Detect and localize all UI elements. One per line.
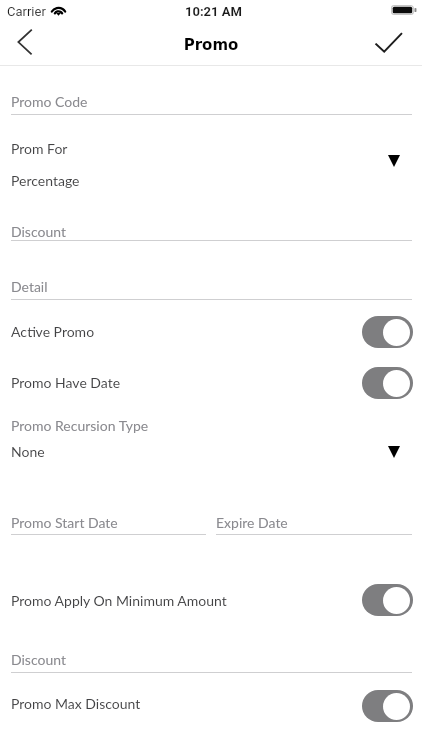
staticText: Promo Code bbox=[11, 93, 88, 110]
button[interactable] bbox=[0, 316, 356, 348]
button[interactable]: Active Promo bbox=[362, 316, 413, 348]
button[interactable] bbox=[0, 584, 356, 616]
button[interactable]: Choose promo for bbox=[388, 155, 400, 167]
button[interactable] bbox=[0, 367, 356, 399]
staticText: Detail bbox=[11, 278, 48, 295]
staticText: None bbox=[11, 443, 45, 460]
button[interactable] bbox=[11, 645, 412, 674]
staticText: Prom For bbox=[11, 140, 68, 157]
staticText: Expire Date bbox=[216, 514, 288, 531]
staticText: Promo Apply On Minimum Amount bbox=[11, 592, 227, 609]
button[interactable] bbox=[11, 272, 412, 301]
button[interactable]: Promo Max Discount bbox=[362, 690, 413, 722]
staticText: Promo Max Discount bbox=[11, 695, 141, 712]
button[interactable] bbox=[11, 508, 206, 536]
staticText: Discount bbox=[11, 223, 66, 240]
button[interactable] bbox=[0, 412, 422, 466]
staticText: Active Promo bbox=[11, 323, 95, 340]
staticText: Discount bbox=[11, 651, 66, 668]
staticText: Promo Start Date bbox=[11, 514, 118, 531]
button[interactable]: Promo Have Date bbox=[362, 367, 413, 399]
button[interactable]: Back bbox=[2, 20, 48, 64]
staticText: Promo Have Date bbox=[11, 374, 121, 391]
staticText: 10:21 AM bbox=[185, 4, 242, 19]
staticText: Percentage bbox=[11, 172, 80, 189]
button[interactable]: Choose recursion type bbox=[388, 446, 400, 458]
staticText: Promo Recursion Type bbox=[11, 417, 149, 434]
button[interactable] bbox=[0, 690, 356, 721]
button[interactable] bbox=[216, 508, 412, 536]
button[interactable]: Save bbox=[372, 26, 410, 60]
staticText: Carrier bbox=[7, 4, 46, 19]
button[interactable]: Promo Apply On Minimum Amount bbox=[362, 584, 413, 616]
button[interactable] bbox=[11, 87, 412, 117]
staticText: Promo bbox=[0, 36, 422, 56]
button[interactable] bbox=[0, 134, 422, 196]
button[interactable] bbox=[11, 217, 412, 243]
